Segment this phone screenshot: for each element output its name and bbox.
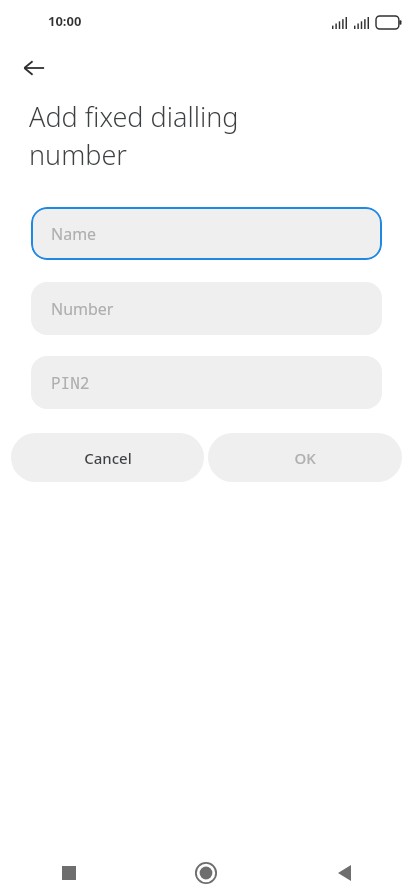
button[interactable]: Back <box>275 850 413 896</box>
staticText: Number <box>51 298 114 320</box>
button[interactable]: Name <box>31 207 382 260</box>
button[interactable]: Recent apps <box>0 850 137 896</box>
staticText: Cancel <box>84 448 132 468</box>
button[interactable]: Home <box>137 850 275 896</box>
button[interactable]: OK <box>208 433 402 482</box>
staticText: OK <box>294 448 316 468</box>
button[interactable]: Back <box>10 44 58 92</box>
button[interactable]: Cancel <box>11 433 204 482</box>
staticText: PIN2 <box>51 372 90 394</box>
staticText: Name <box>51 223 97 245</box>
staticText: Add fixed dialling number <box>29 98 303 173</box>
staticText: 10:00 <box>48 12 82 30</box>
button[interactable]: PIN2 <box>31 356 382 409</box>
button[interactable]: Number <box>31 282 382 335</box>
